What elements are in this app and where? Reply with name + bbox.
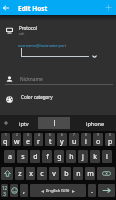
staticText: iphone xyxy=(86,120,105,127)
staticText: z xyxy=(18,169,22,179)
button[interactable]: iphone xyxy=(74,115,116,131)
button[interactable]: a xyxy=(4,150,15,163)
button[interactable]: Delete xyxy=(97,167,115,180)
button[interactable]: d xyxy=(30,150,40,163)
button[interactable] xyxy=(38,117,70,129)
button[interactable]: Add xyxy=(102,0,114,15)
button[interactable]: More suggestions xyxy=(0,115,11,131)
button[interactable]: 8 xyxy=(81,133,91,146)
button[interactable]: n xyxy=(73,167,83,180)
button[interactable]: iptv xyxy=(11,115,37,131)
staticText: English (US) xyxy=(46,188,70,194)
button[interactable]: z xyxy=(15,167,24,180)
staticText: . xyxy=(91,186,93,196)
staticText: m xyxy=(87,169,94,179)
staticText: 7 xyxy=(73,133,75,137)
button[interactable]: f xyxy=(42,150,52,163)
button[interactable]: Nickname xyxy=(2,72,17,87)
staticText: u xyxy=(72,137,77,146)
staticText: h xyxy=(69,152,74,162)
button[interactable]: v xyxy=(49,167,59,180)
staticText: Nickname xyxy=(20,76,43,83)
staticText: d xyxy=(33,152,38,162)
staticText: f xyxy=(46,152,49,162)
staticText: e xyxy=(26,137,30,146)
staticText: t xyxy=(49,137,52,146)
button[interactable]: 1 xyxy=(1,133,10,146)
staticText: o xyxy=(96,137,101,146)
staticText: 0 xyxy=(109,133,111,137)
staticText: q xyxy=(3,137,8,146)
button[interactable]: 2 xyxy=(12,133,21,146)
button[interactable]: , xyxy=(20,184,28,197)
button[interactable]: 4 xyxy=(34,133,43,146)
button[interactable]: l xyxy=(102,150,112,163)
button[interactable]: s xyxy=(17,150,28,163)
staticText: 1 xyxy=(5,133,7,137)
staticText: n xyxy=(76,169,81,179)
staticText: s xyxy=(21,152,25,162)
staticText: 9 xyxy=(97,133,99,137)
staticText: l xyxy=(106,152,108,162)
button[interactable]: 7 xyxy=(69,133,79,146)
button[interactable]: 123 xyxy=(1,184,8,197)
staticText: 8 xyxy=(85,133,87,137)
staticText: Color category xyxy=(21,94,53,100)
staticText: y xyxy=(60,137,64,146)
staticText: a xyxy=(8,152,12,162)
button[interactable]: 6 xyxy=(57,133,67,146)
button[interactable]: x xyxy=(26,167,35,180)
button[interactable]: 3 xyxy=(23,133,32,146)
staticText: b xyxy=(64,169,69,179)
staticText: , xyxy=(23,186,25,196)
staticText: 2 xyxy=(16,133,18,137)
staticText: j xyxy=(82,152,84,162)
button[interactable]: Enter xyxy=(98,184,115,197)
staticText: 3 xyxy=(27,133,29,137)
staticText: username@hostname:port xyxy=(18,43,67,48)
button[interactable]: 9 xyxy=(93,133,103,146)
staticText: g xyxy=(57,152,62,162)
button[interactable]: j xyxy=(78,150,88,163)
staticText: 5 xyxy=(49,133,51,137)
staticText: w xyxy=(14,137,20,146)
button[interactable]: b xyxy=(61,167,71,180)
staticText: r xyxy=(37,137,40,146)
button[interactable]: . xyxy=(88,184,96,197)
button[interactable]: Space xyxy=(30,184,86,197)
button[interactable]: 0 xyxy=(105,133,115,146)
button[interactable]: g xyxy=(54,150,64,163)
staticText: i xyxy=(85,137,87,146)
staticText: c xyxy=(40,169,44,179)
button[interactable]: m xyxy=(85,167,95,180)
button[interactable]: Shift xyxy=(1,167,13,180)
staticText: 123 xyxy=(1,185,8,197)
button[interactable]: Color category xyxy=(2,92,17,107)
button[interactable]: Emoji xyxy=(10,184,18,197)
staticText: 6 xyxy=(61,133,63,137)
button[interactable]: h xyxy=(66,150,76,163)
button[interactable]: 5 xyxy=(45,133,55,146)
staticText: v xyxy=(52,169,56,179)
staticText: k xyxy=(93,152,97,162)
button[interactable]: Show suggestions xyxy=(88,50,100,62)
staticText: Protocol xyxy=(19,25,37,31)
button[interactable]: c xyxy=(37,167,47,180)
staticText: Edit Host xyxy=(18,4,48,13)
staticText: 4 xyxy=(38,133,40,137)
staticText: iptv xyxy=(19,120,29,127)
button[interactable]: k xyxy=(90,150,100,163)
staticText: p xyxy=(108,137,113,146)
staticText: x xyxy=(29,169,33,179)
button[interactable]: Protocol xyxy=(2,23,17,38)
staticText: ssh xyxy=(19,31,25,36)
button[interactable]: Navigate up xyxy=(0,0,11,15)
